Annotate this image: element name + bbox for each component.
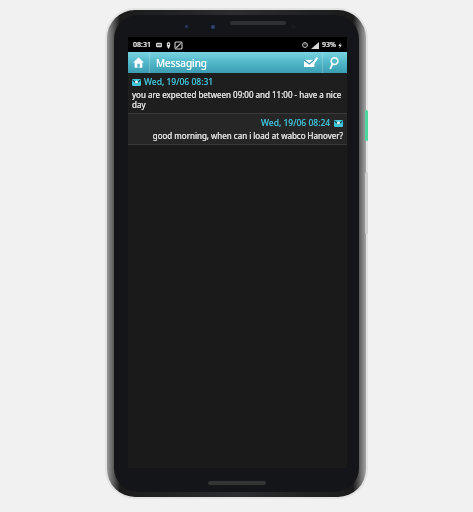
button[interactable]: Home: [128, 52, 149, 73]
staticText: you are expected between 09:00 and 11:00…: [132, 89, 343, 110]
staticText: Wed, 19/06 08:24: [261, 117, 331, 129]
button[interactable]: Compose message: [298, 52, 322, 73]
staticText: Messaging: [156, 56, 298, 70]
staticText: 93%: [322, 40, 336, 50]
button[interactable]: Wed, 19/06 08:31: [128, 73, 347, 113]
staticText: Wed, 19/06 08:31: [144, 76, 214, 88]
staticText: 08:31: [133, 40, 151, 50]
button[interactable]: Search: [323, 52, 347, 73]
button[interactable]: Wed, 19/06 08:24: [128, 114, 347, 144]
staticText: good morning, when can i load at wabco H…: [132, 130, 343, 141]
